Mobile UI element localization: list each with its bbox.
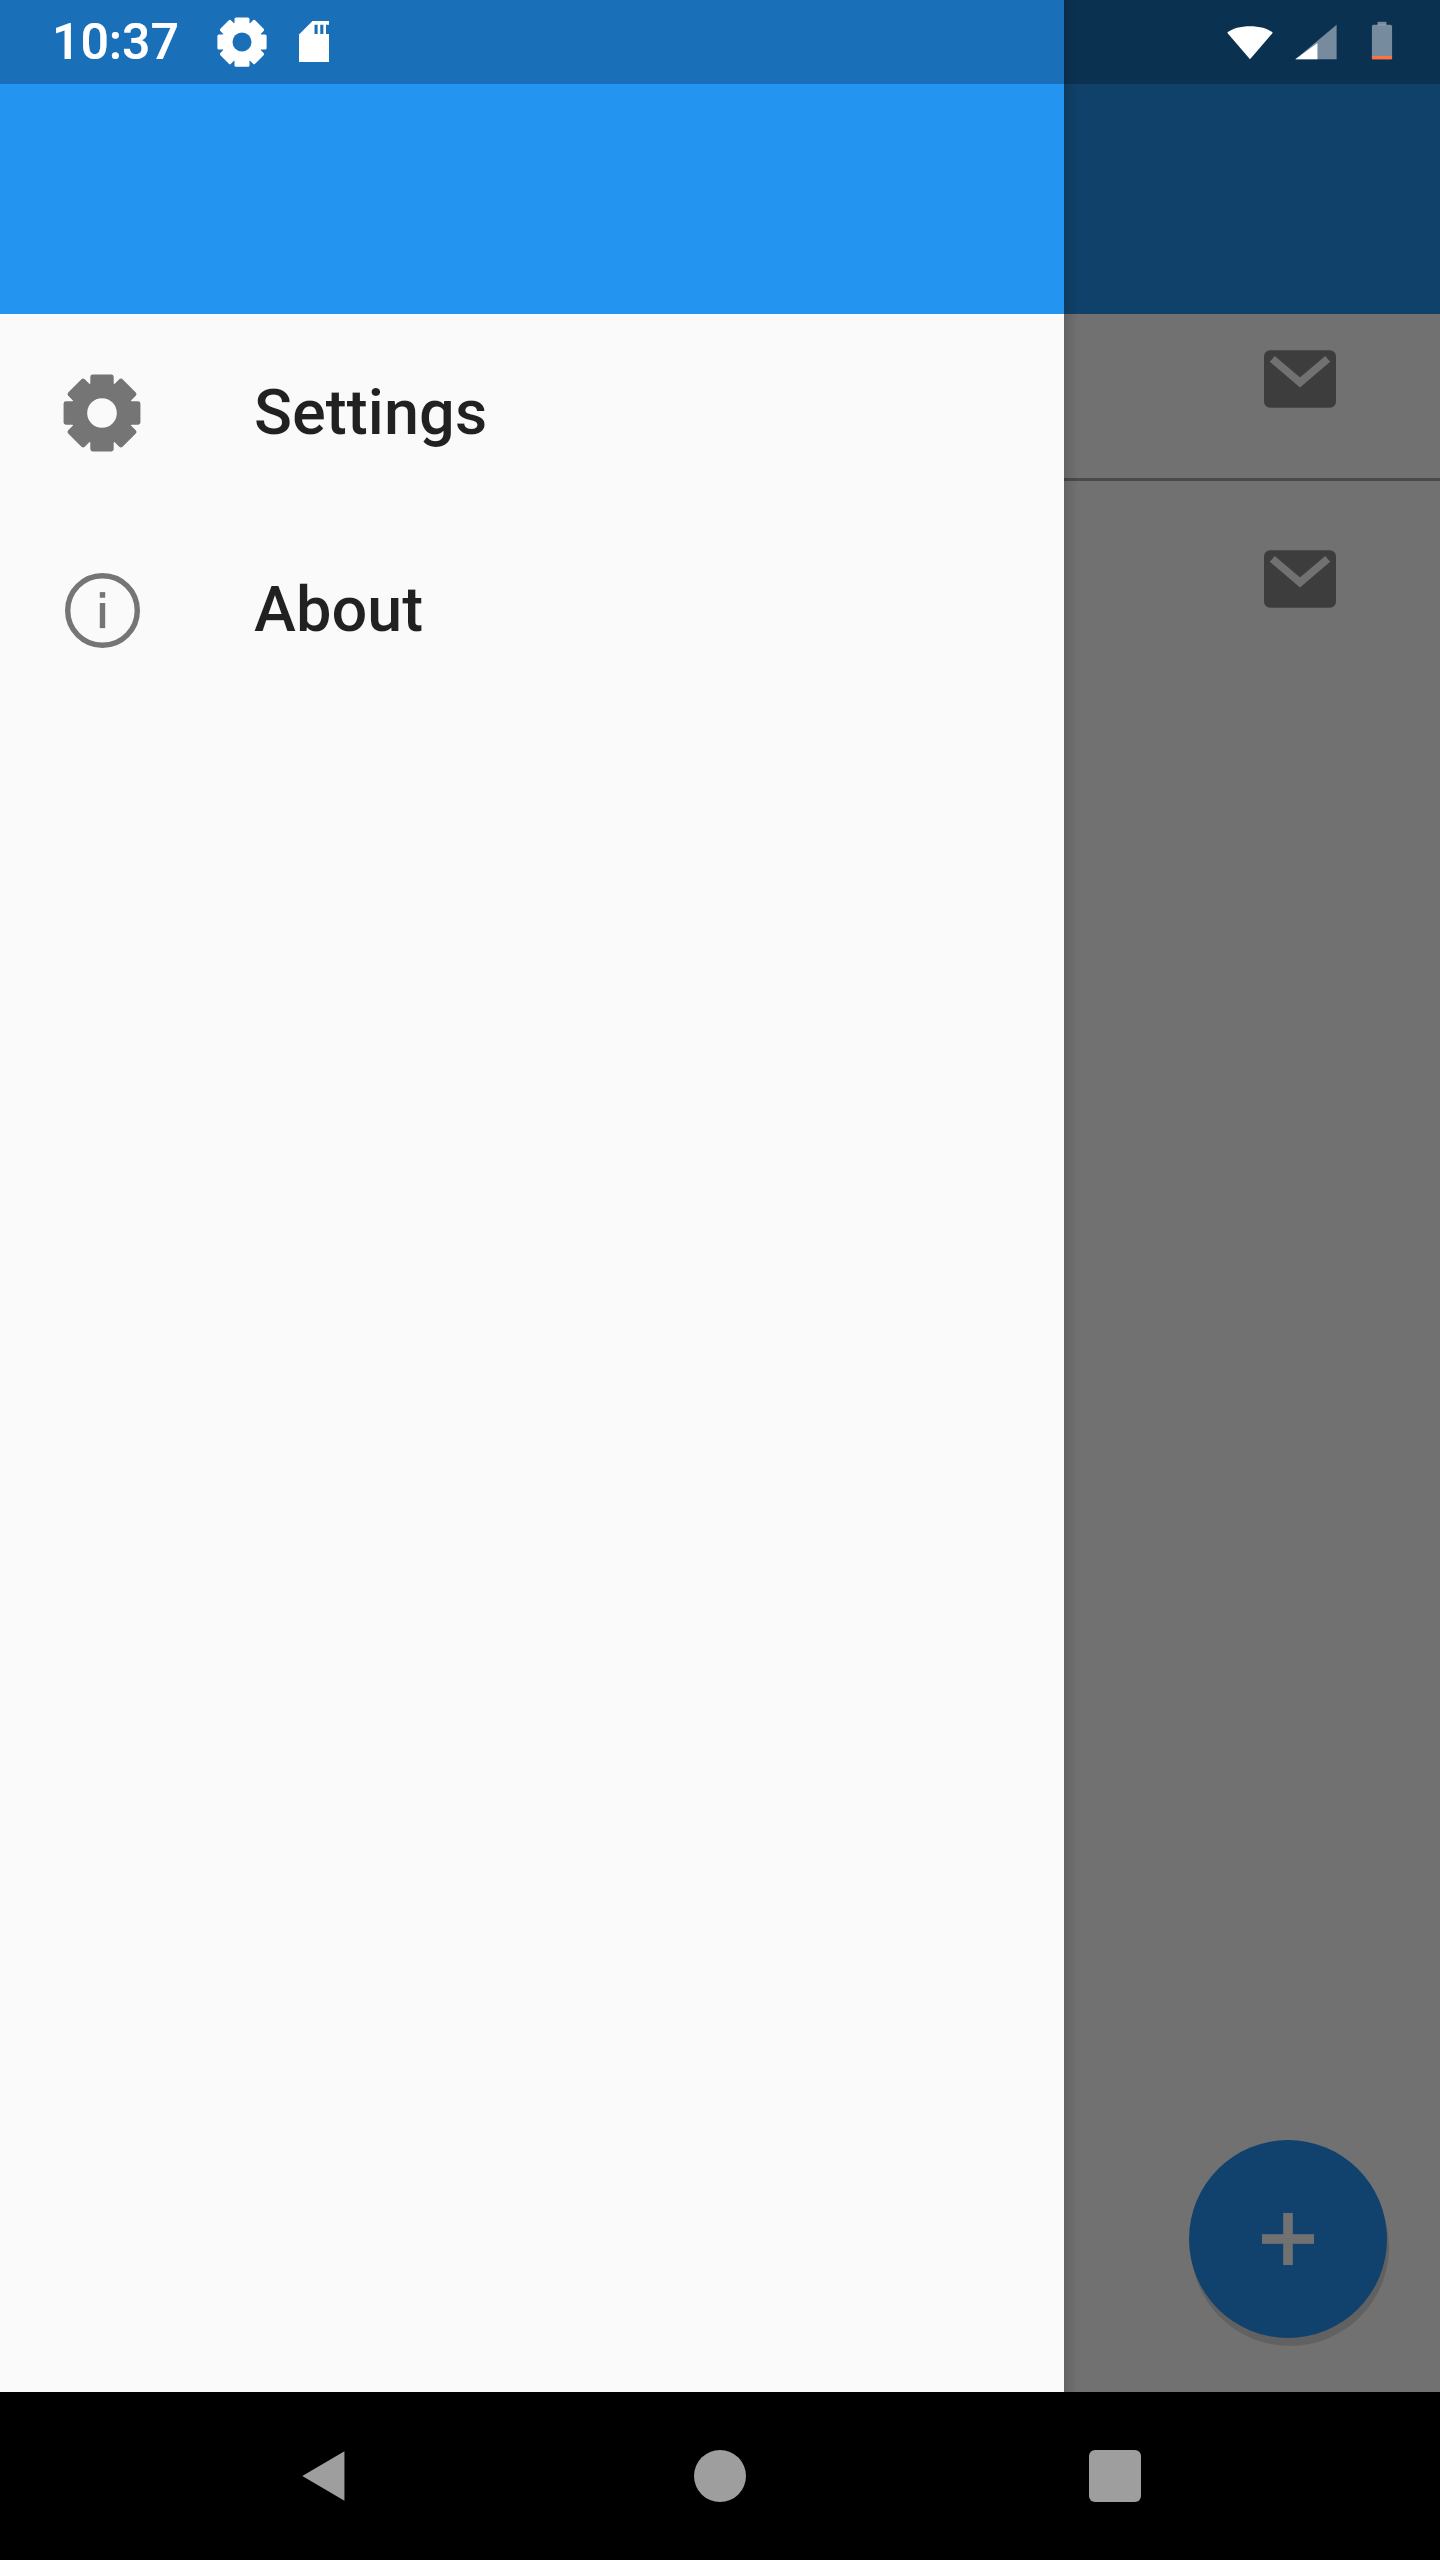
button[interactable]: Settings — [0, 314, 1064, 511]
button[interactable] — [0, 481, 1440, 678]
button[interactable]: About — [0, 511, 1064, 708]
button[interactable]: Recent apps — [1045, 2406, 1185, 2546]
button[interactable]: Add — [1189, 2140, 1387, 2338]
button[interactable]: Home — [650, 2406, 790, 2546]
staticText: Settings — [254, 376, 488, 450]
button[interactable]: Back — [255, 2406, 395, 2546]
button[interactable]: Close navigation drawer — [1064, 0, 1440, 2392]
button[interactable] — [0, 281, 1440, 478]
staticText: About — [254, 573, 424, 647]
staticText: 10:37 — [52, 13, 179, 72]
